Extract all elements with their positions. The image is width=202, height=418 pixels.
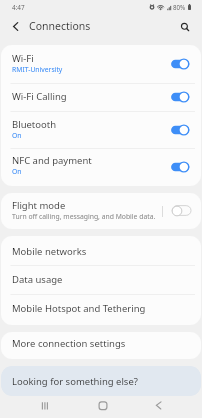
- staticText: Flight mode: [12, 199, 66, 212]
- staticText: Wi-Fi: [12, 52, 34, 65]
- staticText: Looking for something else?: [12, 375, 138, 388]
- staticText: Turn off calling, messaging, and Mobile …: [12, 212, 156, 221]
- button[interactable]: Navigate up: [0, 16, 24, 40]
- staticText: NFC and payment: [12, 154, 92, 167]
- button[interactable]: Search: [175, 17, 197, 39]
- button[interactable]: NFC and payment: [1, 149, 201, 186]
- staticText: Bluetooth: [12, 118, 57, 131]
- staticText: Mobile networks: [12, 245, 87, 258]
- button[interactable]: Home: [90, 396, 112, 418]
- button[interactable]: Wi-Fi Calling: [1, 84, 201, 112]
- staticText: Mobile Hotspot and Tethering: [12, 302, 146, 315]
- button[interactable]: More connection settings: [1, 332, 201, 359]
- staticText: Data usage: [12, 273, 63, 286]
- button[interactable]: Wi-Fi: [1, 45, 201, 84]
- button[interactable]: Mobile Hotspot and Tethering: [1, 295, 201, 325]
- button[interactable]: Bluetooth: [1, 112, 201, 149]
- staticText: On: [12, 167, 22, 176]
- button[interactable]: Recent apps: [33, 396, 55, 418]
- button[interactable]: Mobile networks: [1, 236, 201, 266]
- staticText: RMIT-University: [12, 65, 63, 74]
- staticText: Connections: [29, 19, 91, 33]
- button[interactable]: Data usage: [1, 266, 201, 295]
- button[interactable]: Back: [147, 396, 169, 418]
- staticText: Wi-Fi Calling: [12, 90, 67, 103]
- button[interactable]: Looking for something else?: [1, 366, 201, 396]
- staticText: 80%: [173, 3, 186, 11]
- button[interactable]: Flight mode: [1, 193, 201, 229]
- staticText: 4:47: [12, 3, 25, 12]
- staticText: More connection settings: [12, 337, 126, 350]
- staticText: On: [12, 131, 22, 140]
